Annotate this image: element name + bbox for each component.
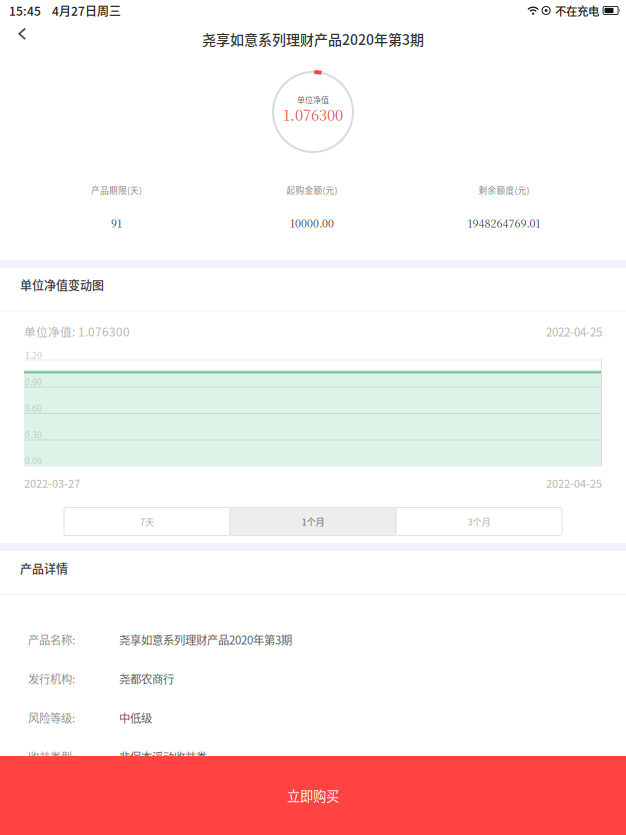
button[interactable]: 返回 [0,21,41,57]
staticText: 尧享如意系列理财产品2020年第3期 [119,631,292,648]
staticText: 0.90 [25,375,42,388]
staticText: 3个月 [467,515,490,528]
staticText: 7天 [140,515,154,528]
button[interactable]: 3个月 [396,507,562,535]
staticText: 中低级 [119,709,152,726]
staticText: 0.30 [25,428,42,441]
staticText: 0.60 [25,402,42,414]
button[interactable]: 1个月 [230,507,396,535]
staticText: 单位净值: 1.076300 [24,323,130,340]
staticText: 1个月 [301,515,324,528]
staticText: 不在充电 [555,2,599,19]
staticText: 立即购买 [287,786,339,805]
staticText: 0.00 [25,454,42,467]
staticText: 尧都农商行 [119,670,174,687]
button[interactable]: 7天 [64,507,230,535]
staticText: 起购金额(元) [286,184,337,196]
staticText: 15:45 [9,2,41,19]
button[interactable]: 立即购买 [0,756,626,835]
staticText: 单位净值变动图 [20,276,104,294]
staticText: 非保本浮动收益类 [119,748,207,765]
staticText: 发行机构: [28,670,75,687]
staticText: 产品名称: [28,631,75,648]
staticText: 产品期限(天) [91,184,142,196]
staticText: 收益类型: [28,748,75,765]
staticText: 2022-03-27 [24,475,80,491]
staticText: 单位净值 [297,94,329,105]
staticText: 2022-04-25 [546,475,602,491]
staticText: 剩余额度(元) [478,184,529,196]
staticText: 1.20 [25,349,42,361]
staticText: 产品详情 [20,560,68,577]
staticText: 2022-04-25 [546,323,602,340]
staticText: 尧享如意系列理财产品2020年第3期 [202,29,424,49]
staticText: 风险等级: [28,709,75,726]
staticText: 10000.00 [290,215,334,231]
staticText: 1948264769.01 [467,215,540,231]
staticText: 91 [111,215,122,231]
staticText: 4月27日周三 [52,2,121,19]
staticText: 1.076300 [283,104,343,125]
